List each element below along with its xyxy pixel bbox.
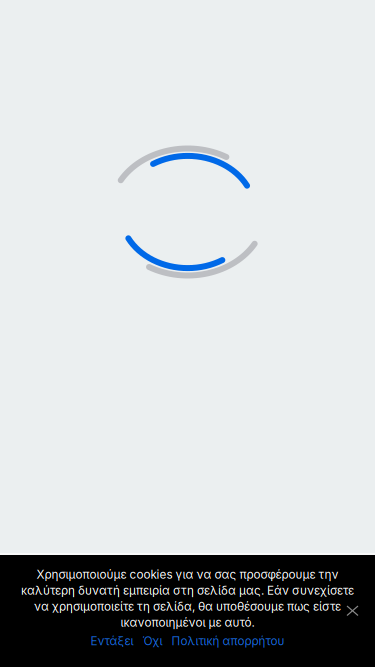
staticText: Όχι [142, 634, 162, 648]
staticText: Χρησιμοποιούμε cookies για να σας προσφέ… [36, 567, 338, 582]
staticText: να χρησιμοποιείτε τη σελίδα, θα υποθέσου… [34, 599, 341, 614]
staticText: Πολιτική απορρήτου [171, 634, 284, 648]
staticText: καλύτερη δυνατή εμπειρία στη σελίδα μας.… [21, 583, 354, 598]
button[interactable]: Όχι [142, 634, 162, 648]
staticText: Εντάξει [90, 634, 133, 648]
button[interactable]: Close [347, 606, 358, 615]
staticText: ικανοποιημένοι με αυτό. [120, 615, 254, 630]
button[interactable]: Εντάξει [90, 634, 133, 648]
button[interactable]: Πολιτική απορρήτου [171, 634, 284, 648]
